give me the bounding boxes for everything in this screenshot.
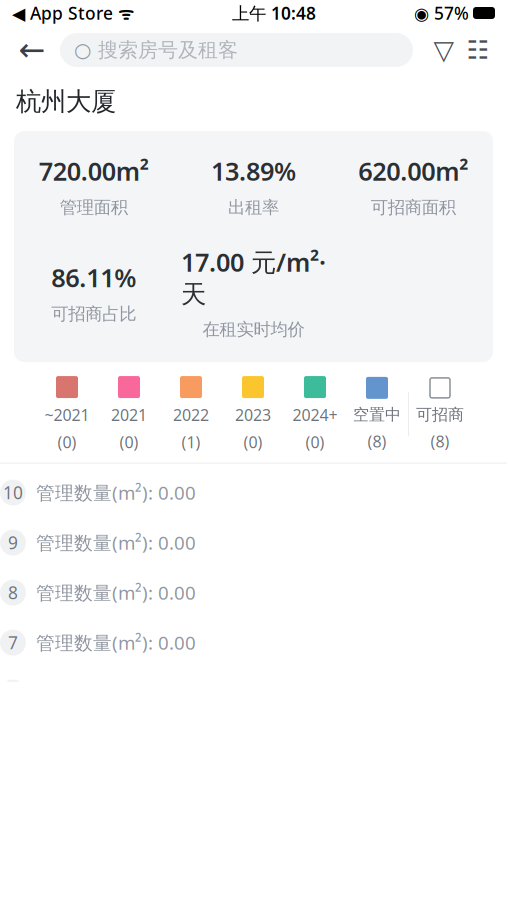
staticText: (1) xyxy=(181,431,200,452)
staticText: 可招商占比 xyxy=(51,303,136,324)
staticText: ᯤ xyxy=(113,1,134,24)
staticText: (8) xyxy=(430,430,449,452)
staticText: (8) xyxy=(367,430,386,452)
staticText: 86.11% xyxy=(51,261,136,294)
button[interactable]: 返回 xyxy=(12,30,52,70)
button[interactable]: 切换视图 xyxy=(461,30,495,70)
button[interactable]: 2023 xyxy=(222,376,284,453)
button[interactable]: ~2021 xyxy=(36,376,98,453)
staticText: (0) xyxy=(57,431,76,452)
staticText: 搜索房号及租客 xyxy=(98,38,238,62)
staticText: 2022 xyxy=(173,404,209,425)
staticText: 管理数量(m²): 0.00 xyxy=(36,580,196,605)
staticText: 可招商 xyxy=(416,405,464,425)
staticText: ○ xyxy=(74,39,91,61)
staticText: 2024+ xyxy=(292,404,337,425)
staticText: 13.89% xyxy=(211,154,296,188)
staticText: 管理数量(m²): 0.00 xyxy=(36,630,196,655)
staticText: ← xyxy=(18,32,45,68)
staticText: 出租率 xyxy=(228,197,279,218)
staticText: 8 xyxy=(8,581,18,604)
staticText: ▽ xyxy=(433,35,454,65)
staticText: 空置中 xyxy=(353,405,401,425)
staticText: 2021 xyxy=(111,404,147,425)
button[interactable]: 2024+ xyxy=(284,376,346,453)
staticText: 9 xyxy=(8,531,18,554)
staticText: 在租实时均价 xyxy=(202,319,304,340)
staticText: 管理数量(m²): 0.00 xyxy=(36,530,196,555)
button[interactable]: 可招商 xyxy=(409,377,471,452)
staticText: 10 xyxy=(3,481,23,504)
staticText: (0) xyxy=(119,431,138,452)
button[interactable]: 2022 xyxy=(160,376,222,453)
staticText: 上午 10:48 xyxy=(232,1,316,24)
staticText: 管理数量(m²): 0.00 xyxy=(36,480,196,505)
staticText: 17.00 元/m²· 天 xyxy=(181,245,326,310)
staticText: 7 xyxy=(8,631,18,654)
staticText: 杭州大厦 xyxy=(16,86,116,117)
staticText: ☷ xyxy=(466,36,489,64)
button[interactable]: 筛选 xyxy=(427,30,461,70)
staticText: ◀ App Store xyxy=(12,1,113,24)
staticText: 可招商面积 xyxy=(371,197,456,218)
staticText: 620.00m² xyxy=(358,154,468,188)
staticText: 管理面积 xyxy=(60,197,128,218)
staticText: ◉ 57% xyxy=(414,1,469,24)
button[interactable]: 2021 xyxy=(98,376,160,453)
staticText: 2023 xyxy=(235,404,271,425)
staticText: ~2021 xyxy=(44,404,89,425)
button[interactable]: 空置中 xyxy=(346,377,408,452)
staticText: (0) xyxy=(305,431,324,452)
staticText: 720.00m² xyxy=(39,154,149,188)
staticText: (0) xyxy=(243,431,262,452)
